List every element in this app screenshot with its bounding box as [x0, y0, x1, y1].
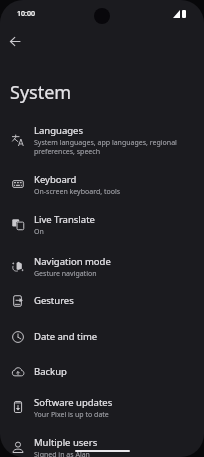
button[interactable]: Backup: [0, 361, 204, 383]
button[interactable]: Live Translate: [0, 209, 204, 239]
staticText: Keyboard: [34, 173, 77, 186]
staticText: preferences, speech: [34, 147, 100, 157]
staticText: Gestures: [34, 294, 74, 307]
button[interactable]: Languages: [0, 120, 204, 159]
staticText: Date and time: [34, 330, 98, 343]
staticText: Signed in as Alan: [34, 450, 90, 457]
staticText: System languages, app languages, regiona…: [34, 138, 177, 148]
staticText: Software updates: [34, 396, 113, 409]
staticText: On-screen keyboard, tools: [34, 187, 121, 197]
button[interactable]: Software updates: [0, 392, 204, 422]
staticText: Backup: [34, 365, 67, 378]
staticText: Multiple users: [34, 436, 98, 449]
button[interactable]: Keyboard: [0, 169, 204, 199]
staticText: Navigation mode: [34, 255, 111, 268]
staticText: Gesture navigation: [34, 269, 97, 279]
staticText: On: [34, 227, 44, 237]
button[interactable]: Navigation mode: [0, 251, 204, 281]
staticText: Live Translate: [34, 213, 95, 226]
staticText: 10:00: [17, 9, 35, 19]
button[interactable]: Date and time: [0, 326, 204, 348]
staticText: System: [10, 80, 72, 105]
button[interactable]: Back: [3, 29, 27, 53]
staticText: Languages: [34, 124, 83, 137]
button[interactable]: Gestures: [0, 290, 204, 312]
button[interactable]: Multiple users: [0, 432, 204, 457]
staticText: Your Pixel is up to date: [34, 410, 109, 420]
